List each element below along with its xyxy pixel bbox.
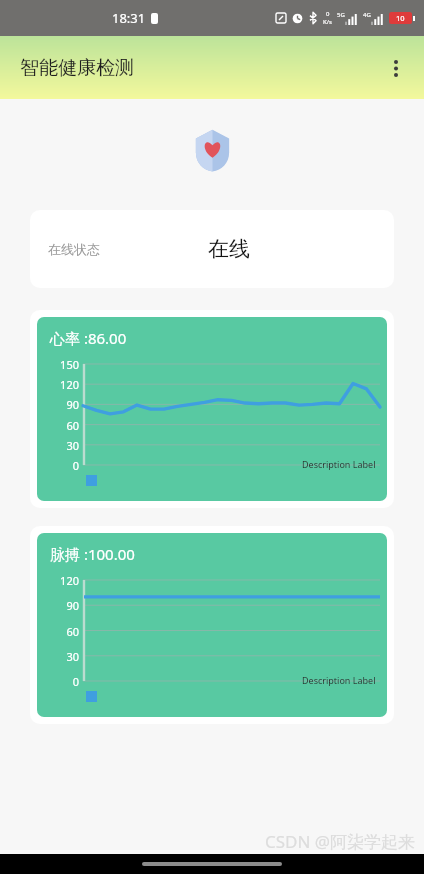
staticText: Description Label bbox=[302, 458, 376, 470]
staticText: 10 bbox=[396, 13, 405, 23]
staticText: 30 bbox=[66, 438, 79, 453]
staticText: 智能健康检测 bbox=[20, 56, 134, 80]
staticText: K/s bbox=[323, 18, 332, 26]
button[interactable]: 脉搏 :100.00 bbox=[30, 526, 394, 724]
staticText: 18:31 bbox=[112, 9, 146, 27]
staticText: 30 bbox=[66, 649, 79, 664]
staticText: 在线状态 bbox=[48, 241, 100, 257]
button[interactable]: More options bbox=[373, 45, 419, 91]
staticText: 60 bbox=[66, 624, 79, 639]
staticText: 60 bbox=[66, 418, 79, 433]
staticText: 0 bbox=[72, 458, 79, 473]
staticText: 心率 :86.00 bbox=[50, 328, 127, 348]
staticText: 90 bbox=[66, 598, 79, 613]
staticText: 90 bbox=[66, 397, 79, 412]
other: Health protection bbox=[194, 129, 231, 172]
staticText: 在线 bbox=[208, 236, 250, 262]
staticText: 150 bbox=[60, 357, 79, 372]
staticText: Description Label bbox=[302, 674, 376, 686]
staticText: 0 bbox=[326, 10, 330, 18]
staticText: 0 bbox=[72, 674, 79, 689]
button[interactable]: 在线状态 bbox=[30, 210, 394, 288]
staticText: 120 bbox=[60, 377, 79, 392]
button[interactable]: 心率 :86.00 bbox=[30, 310, 394, 508]
staticText: 5G bbox=[337, 11, 345, 19]
staticText: 120 bbox=[60, 573, 79, 588]
staticText: 4G bbox=[363, 11, 371, 19]
staticText: CSDN @阿柒学起来 bbox=[265, 830, 416, 853]
staticText: 脉搏 :100.00 bbox=[50, 544, 135, 564]
